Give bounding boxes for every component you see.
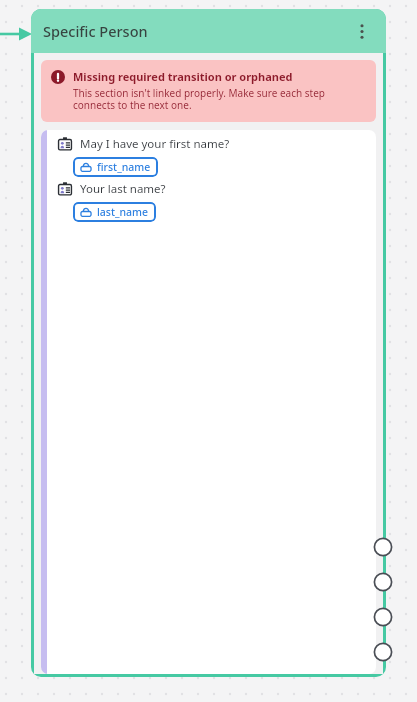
button[interactable]: first_name [73,157,158,177]
button[interactable]: Missing required transition or orphaned [41,60,376,122]
staticText: first_name [97,160,151,174]
button[interactable]: More options [350,19,374,43]
staticText: This section isn't linked properly. Make… [73,86,366,112]
staticText: Missing required transition or orphaned [73,69,293,84]
staticText: May I have your first name? [80,136,230,152]
button[interactable]: Specific Person [31,9,386,677]
staticText: last_name [97,205,149,219]
button[interactable]: May I have your first name? [41,130,376,674]
staticText: Specific Person [43,21,148,41]
staticText: Your last name? [80,181,166,197]
button[interactable]: Specific Person [31,9,386,53]
button[interactable]: last_name [73,202,156,222]
